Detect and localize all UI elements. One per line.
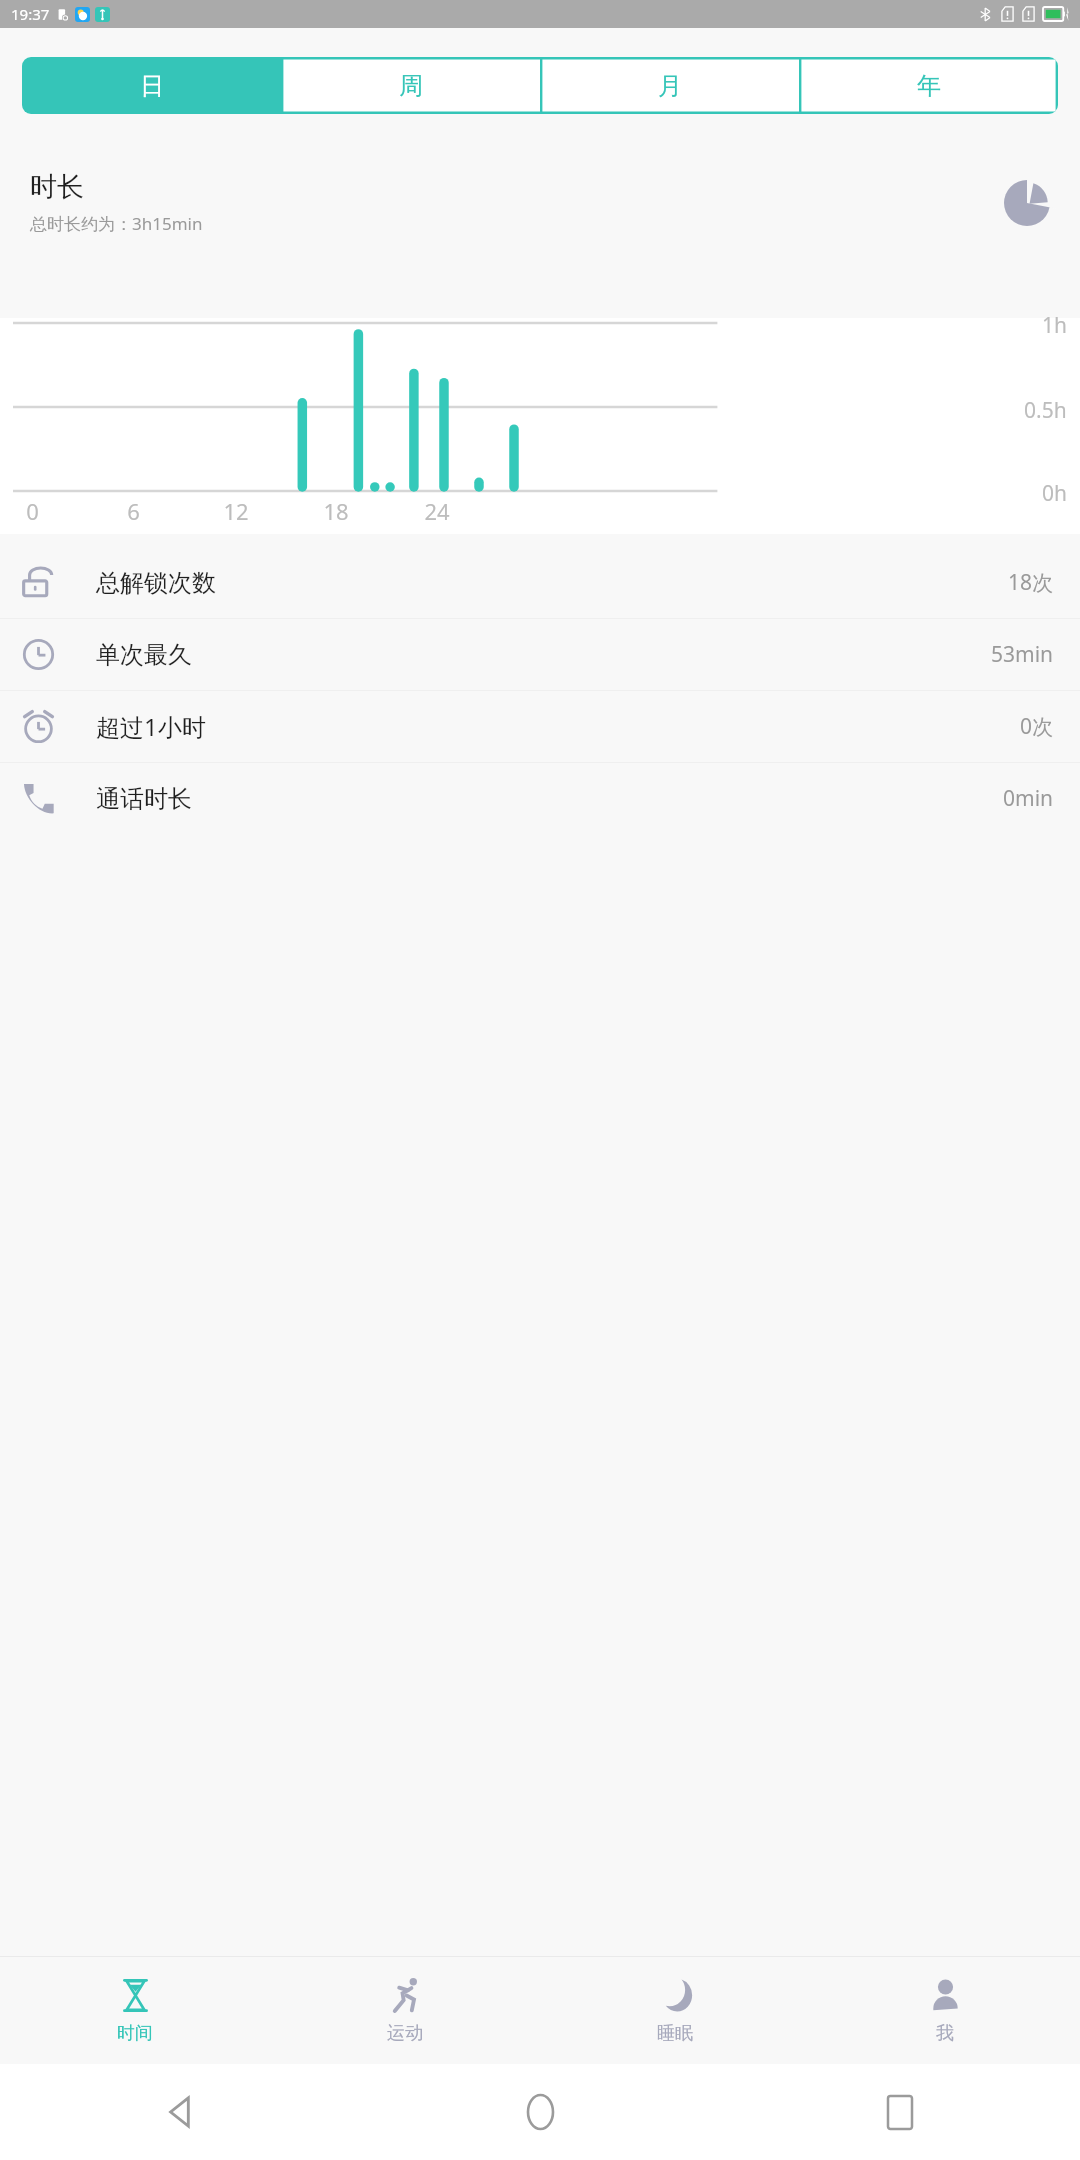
button[interactable]: 总解锁次数 — [0, 547, 1080, 618]
button[interactable]: 年 — [799, 57, 1058, 114]
staticText: 时间 — [117, 2022, 153, 2045]
staticText: 24 — [424, 496, 450, 526]
staticText: 0min — [1003, 784, 1054, 813]
staticText: 0.5h — [1024, 396, 1067, 425]
button[interactable]: 超过1小时 — [0, 691, 1080, 762]
staticText: 通话时长 — [96, 784, 192, 814]
staticText: 超过1小时 — [96, 710, 206, 743]
staticText: 0 — [26, 496, 39, 526]
staticText: 12 — [223, 496, 249, 526]
button[interactable]: 我 — [810, 1957, 1080, 2064]
staticText: 总时长约为：3h15min — [30, 212, 203, 235]
staticText: 月 — [658, 71, 682, 101]
button[interactable]: 日 — [22, 57, 281, 114]
staticText: 运动 — [387, 2022, 423, 2045]
button[interactable]: 单次最久 — [0, 619, 1080, 690]
staticText: 18次 — [1008, 568, 1054, 597]
other: Pie chart — [1004, 180, 1050, 226]
staticText: 单次最久 — [96, 640, 192, 670]
staticText: 我 — [936, 2022, 954, 2045]
staticText: 53min — [991, 640, 1054, 669]
staticText: 年 — [917, 71, 941, 101]
button[interactable]: Back — [0, 2064, 360, 2160]
staticText: 0h — [1042, 479, 1067, 508]
staticText: 日 — [140, 71, 164, 101]
staticText: 时长 — [30, 170, 84, 204]
staticText: 睡眠 — [657, 2022, 693, 2045]
button[interactable]: 周 — [281, 57, 540, 114]
staticText: 周 — [399, 71, 423, 101]
staticText: 0次 — [1020, 712, 1054, 741]
staticText: 19:37 — [11, 4, 50, 24]
staticText: 6 — [127, 496, 140, 526]
staticText: 18 — [323, 496, 349, 526]
staticText: 1h — [1042, 311, 1067, 340]
staticText: 总解锁次数 — [96, 568, 216, 598]
button[interactable]: 运动 — [270, 1957, 540, 2064]
button[interactable]: 通话时长 — [0, 763, 1080, 834]
button[interactable]: Recents — [720, 2064, 1080, 2160]
button[interactable]: 时间 — [0, 1957, 270, 2064]
button[interactable]: Home — [360, 2064, 720, 2160]
button[interactable]: 月 — [540, 57, 799, 114]
button[interactable]: 睡眠 — [540, 1957, 810, 2064]
